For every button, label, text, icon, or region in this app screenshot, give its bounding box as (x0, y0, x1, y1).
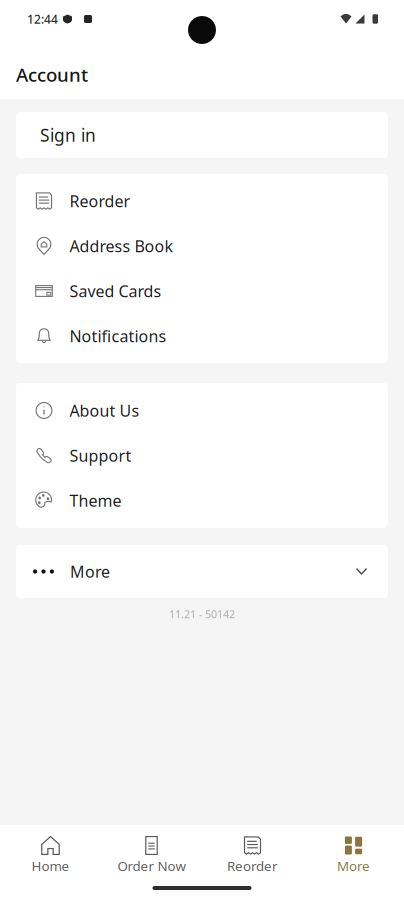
staticText: About Us (69, 400, 139, 421)
button[interactable]: Reorder (16, 178, 388, 223)
button[interactable]: About Us (16, 388, 388, 433)
button[interactable]: Theme (16, 478, 388, 523)
button[interactable]: Address Book (16, 223, 388, 268)
staticText: More (70, 561, 110, 582)
button[interactable]: Saved Cards (16, 268, 388, 313)
button[interactable]: More (16, 545, 388, 598)
staticText: Account (16, 62, 88, 87)
staticText: Reorder (69, 190, 130, 212)
button[interactable]: More (303, 825, 404, 876)
staticText: Theme (69, 490, 121, 511)
staticText: Notifications (69, 325, 166, 347)
staticText: 11.21 - 50142 (169, 607, 235, 621)
staticText: Address Book (69, 235, 173, 257)
staticText: Home (31, 857, 69, 875)
button[interactable]: Reorder (202, 825, 303, 876)
staticText: Reorder (227, 857, 278, 875)
button[interactable]: Order Now (101, 825, 202, 876)
staticText: Support (69, 445, 131, 466)
staticText: More (337, 857, 370, 875)
staticText: 12:44 (27, 11, 58, 27)
staticText: Order Now (117, 857, 185, 875)
staticText: Sign in (40, 123, 96, 146)
button[interactable]: Notifications (16, 313, 388, 358)
button[interactable]: Support (16, 433, 388, 478)
staticText: Saved Cards (69, 280, 161, 302)
button[interactable]: Sign in (16, 112, 388, 158)
button[interactable]: Home (0, 825, 101, 876)
